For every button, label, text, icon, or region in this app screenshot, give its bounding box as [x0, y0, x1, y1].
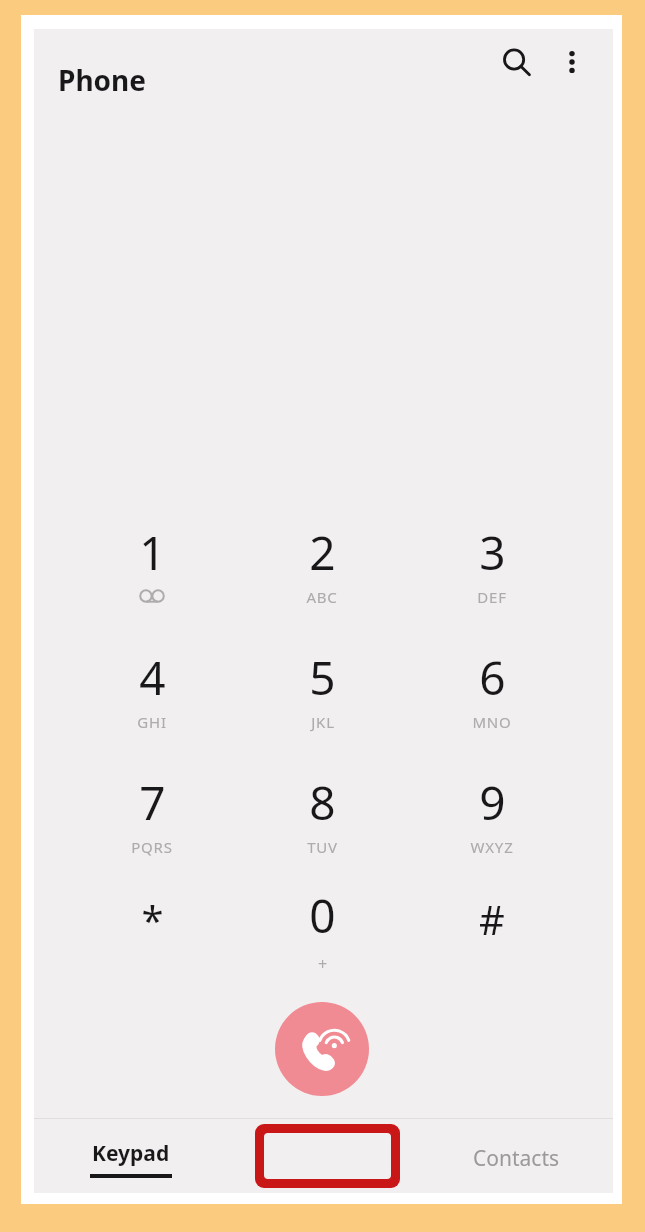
- staticText: 6: [479, 646, 506, 709]
- staticText: JKL: [311, 712, 335, 732]
- staticText: 3: [479, 521, 506, 584]
- button[interactable]: Recents: [227, 1123, 420, 1193]
- staticText: #: [479, 892, 505, 946]
- button[interactable]: 9: [424, 757, 560, 869]
- staticText: 2: [309, 521, 336, 584]
- button[interactable]: 2: [254, 507, 390, 619]
- staticText: +: [318, 953, 328, 975]
- staticText: Keypad: [92, 1139, 170, 1168]
- button[interactable]: *: [84, 870, 220, 982]
- staticText: 7: [139, 771, 166, 834]
- staticText: ABC: [306, 587, 338, 607]
- button[interactable]: Call: [254, 979, 390, 1119]
- button[interactable]: 5: [254, 632, 390, 744]
- button[interactable]: Contacts: [420, 1123, 613, 1193]
- button[interactable]: 7: [84, 757, 220, 869]
- staticText: GHI: [137, 712, 167, 732]
- staticText: 0: [309, 884, 336, 947]
- staticText: *: [141, 892, 164, 946]
- staticText: Phone: [58, 61, 147, 99]
- staticText: MNO: [472, 712, 512, 732]
- staticText: Contacts: [473, 1144, 560, 1173]
- button[interactable]: More options: [548, 38, 596, 86]
- staticText: 1: [139, 521, 166, 584]
- button[interactable]: Search: [492, 38, 540, 86]
- staticText: 9: [479, 771, 506, 834]
- staticText: TUV: [307, 837, 338, 857]
- button[interactable]: 3: [424, 507, 560, 619]
- staticText: 4: [139, 646, 166, 709]
- staticText: 8: [309, 771, 336, 834]
- button[interactable]: 8: [254, 757, 390, 869]
- button[interactable]: 0: [254, 870, 390, 982]
- button[interactable]: 4: [84, 632, 220, 744]
- button[interactable]: 6: [424, 632, 560, 744]
- staticText: WXYZ: [470, 837, 514, 857]
- staticText: DEF: [477, 587, 507, 607]
- staticText: 5: [309, 646, 336, 709]
- button[interactable]: Keypad: [34, 1123, 227, 1193]
- button[interactable]: #: [424, 870, 560, 982]
- button[interactable]: 1: [84, 507, 220, 619]
- staticText: PQRS: [131, 837, 173, 857]
